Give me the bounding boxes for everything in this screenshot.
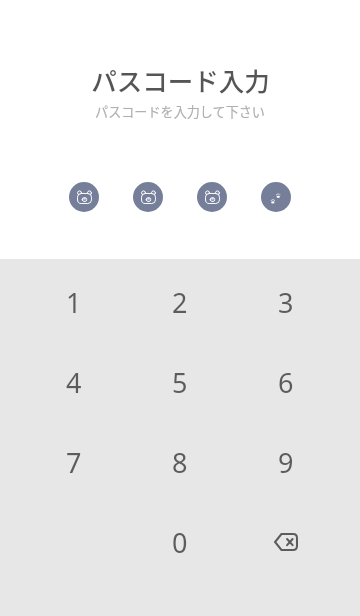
- button[interactable]: 0: [127, 502, 233, 582]
- staticText: 6: [278, 364, 294, 401]
- staticText: 8: [172, 444, 188, 481]
- staticText: 2: [172, 284, 188, 321]
- button[interactable]: 9: [233, 422, 339, 502]
- button[interactable]: 7: [21, 422, 127, 502]
- button[interactable]: 8: [127, 422, 233, 502]
- staticText: 5: [172, 364, 188, 401]
- staticText: 4: [66, 364, 82, 401]
- button[interactable]: 2: [127, 262, 233, 342]
- staticText: 1: [66, 284, 82, 321]
- staticText: パスコードを入力して下さい: [95, 102, 265, 121]
- staticText: 0: [172, 524, 188, 561]
- button[interactable]: 6: [233, 342, 339, 422]
- button[interactable]: 1: [21, 262, 127, 342]
- button[interactable]: 5: [127, 342, 233, 422]
- staticText: 3: [278, 284, 294, 321]
- button[interactable]: 3: [233, 262, 339, 342]
- staticText: パスコード入力: [91, 61, 270, 98]
- button[interactable]: 4: [21, 342, 127, 422]
- staticText: 7: [66, 444, 82, 481]
- staticText: 9: [278, 444, 294, 481]
- button[interactable]: Backspace: [233, 502, 339, 582]
